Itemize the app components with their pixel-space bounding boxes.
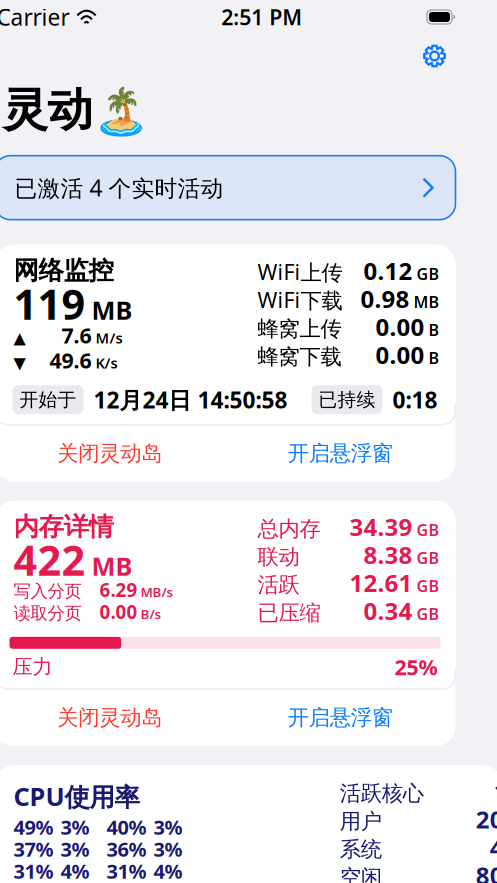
- staticText: 12.61: [349, 567, 412, 599]
- staticText: K/s: [91, 353, 117, 372]
- staticText: 4: [490, 831, 497, 863]
- staticText: 31%: [13, 858, 53, 883]
- staticText: 0.12: [363, 255, 412, 287]
- staticText: 40%: [106, 814, 146, 840]
- button[interactable]: 关闭灵动岛: [0, 689, 225, 746]
- staticText: GB: [412, 575, 439, 596]
- staticText: CPU使用率: [13, 779, 139, 813]
- staticText: 0.00: [375, 311, 424, 343]
- staticText: 25%: [394, 653, 437, 681]
- staticText: 空闲: [340, 864, 382, 883]
- staticText: 总内存: [257, 516, 320, 542]
- staticText: 写入分页: [13, 581, 81, 602]
- staticText: GB: [412, 519, 439, 540]
- staticText: 读取分页: [13, 603, 81, 624]
- staticText: 内存详情: [13, 511, 113, 542]
- staticText: 7.6: [61, 321, 91, 349]
- staticText: 关闭灵动岛: [57, 440, 162, 466]
- staticText: B/s: [137, 605, 161, 623]
- staticText: 3%: [153, 814, 182, 840]
- staticText: MB/s: [137, 583, 173, 601]
- staticText: B: [424, 319, 439, 340]
- staticText: 80: [476, 859, 497, 883]
- staticText: 0.98: [360, 283, 409, 315]
- staticText: 20: [476, 803, 497, 835]
- staticText: 4%: [60, 858, 89, 883]
- staticText: ▼: [13, 354, 25, 372]
- staticText: 2:51 PM: [221, 3, 302, 31]
- staticText: WiFi上传: [257, 258, 342, 286]
- button[interactable]: Settings: [413, 35, 455, 77]
- staticText: 12: [494, 775, 497, 807]
- staticText: 0.34: [363, 595, 412, 627]
- staticText: GB: [412, 263, 439, 284]
- button[interactable]: 开启悬浮窗: [225, 425, 455, 482]
- staticText: 6.29: [99, 577, 137, 602]
- staticText: 49%: [13, 814, 53, 840]
- staticText: 开启悬浮窗: [288, 704, 393, 731]
- staticText: GB: [412, 603, 439, 624]
- staticText: 0:18: [392, 385, 437, 415]
- staticText: WiFi下载: [257, 286, 342, 314]
- staticText: 12月24日 14:50:58: [93, 385, 287, 415]
- staticText: 36%: [106, 836, 146, 862]
- staticText: B: [424, 347, 439, 368]
- staticText: 压力: [12, 655, 52, 679]
- staticText: 网络监控: [13, 255, 113, 286]
- staticText: 蜂窝下载: [257, 344, 341, 370]
- staticText: 3%: [60, 836, 89, 862]
- staticText: GB: [412, 547, 439, 568]
- staticText: 关闭灵动岛: [57, 704, 162, 731]
- staticText: MB: [91, 549, 132, 583]
- staticText: 开启悬浮窗: [288, 440, 393, 466]
- staticText: 用户: [340, 808, 382, 834]
- staticText: 已激活 4 个实时活动: [14, 173, 223, 203]
- staticText: 联动: [257, 544, 299, 570]
- staticText: 3%: [60, 814, 89, 840]
- staticText: 37%: [13, 836, 53, 862]
- staticText: 422: [13, 532, 85, 587]
- staticText: M/s: [91, 328, 122, 347]
- staticText: 开始于: [19, 388, 76, 411]
- staticText: MB: [91, 293, 132, 327]
- staticText: 8.38: [363, 539, 412, 571]
- staticText: MB: [409, 291, 439, 312]
- staticText: 3%: [153, 836, 182, 862]
- staticText: 31%: [106, 858, 146, 883]
- staticText: 已持续: [318, 388, 375, 411]
- button[interactable]: 已激活 4 个实时活动: [0, 156, 473, 220]
- staticText: 119: [13, 276, 85, 331]
- button[interactable]: 开启悬浮窗: [225, 689, 455, 746]
- button[interactable]: 关闭灵动岛: [0, 425, 225, 482]
- staticText: 系统: [340, 836, 382, 862]
- staticText: 活跃核心: [340, 780, 424, 806]
- staticText: 34.39: [349, 511, 412, 543]
- staticText: Carrier: [0, 2, 69, 32]
- staticText: 活跃: [257, 572, 299, 598]
- staticText: 4%: [153, 858, 182, 883]
- staticText: 0.00: [375, 339, 424, 371]
- staticText: ▲: [13, 329, 25, 347]
- staticText: 灵动🏝️: [2, 82, 148, 138]
- staticText: 蜂窝上传: [257, 316, 341, 342]
- staticText: 0.00: [99, 599, 137, 624]
- staticText: 49.6: [49, 346, 91, 374]
- staticText: 已压缩: [257, 600, 320, 626]
